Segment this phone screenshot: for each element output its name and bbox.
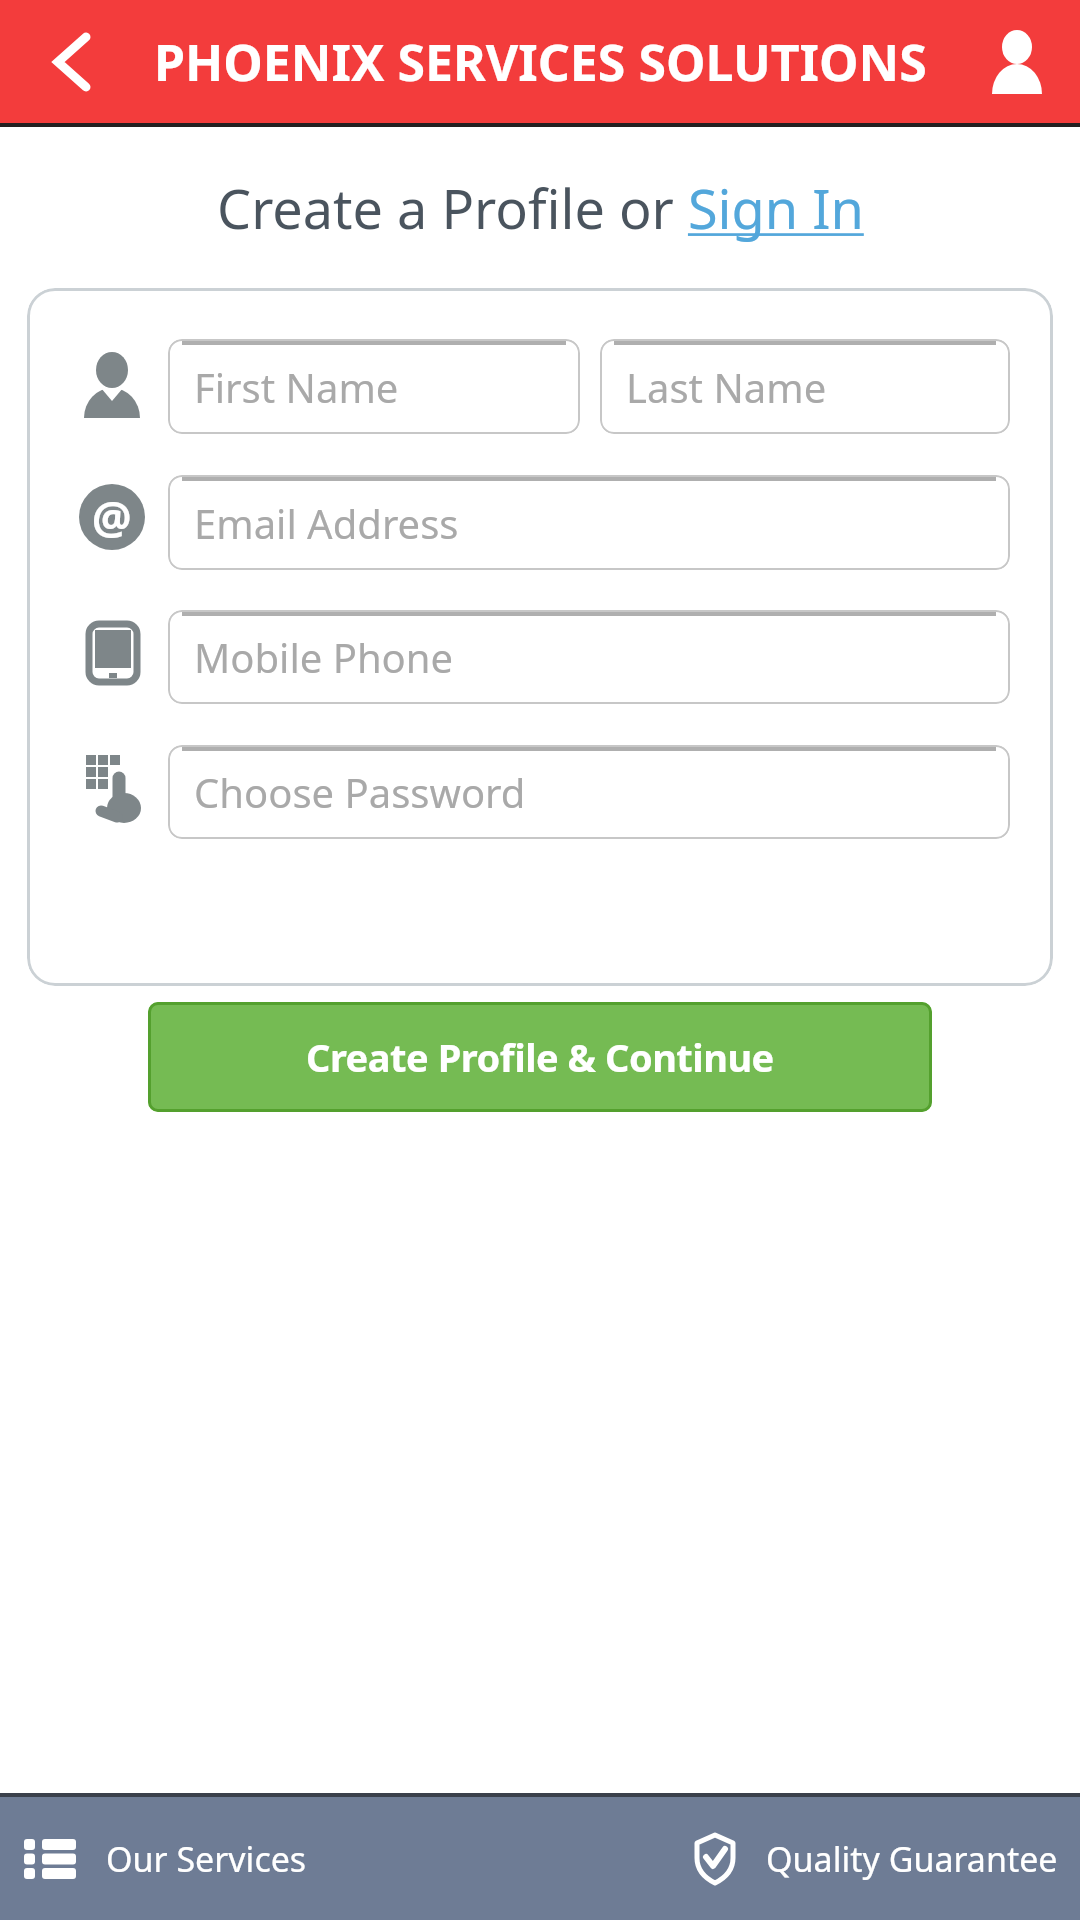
staticText: @ bbox=[92, 487, 132, 547]
button[interactable]: Last Name bbox=[600, 339, 1010, 434]
staticText: First Name bbox=[194, 360, 399, 414]
staticText: Create Profile & Continue bbox=[306, 1031, 774, 1083]
staticText: Mobile Phone bbox=[194, 630, 454, 684]
button[interactable]: Choose Password bbox=[168, 745, 1010, 839]
button[interactable]: Create Profile & Continue bbox=[148, 1002, 932, 1112]
button[interactable]: Create a Profile or Sign In bbox=[217, 171, 864, 245]
button[interactable]: Quality Guarantee bbox=[694, 1832, 1058, 1886]
button[interactable]: First Name bbox=[168, 339, 580, 434]
staticText: Choose Password bbox=[194, 765, 526, 819]
staticText: Our Services bbox=[106, 1836, 307, 1882]
staticText: PHOENIX SERVICES SOLUTIONS bbox=[154, 28, 927, 96]
button[interactable]: Our Services bbox=[0, 1836, 307, 1882]
staticText: Last Name bbox=[626, 360, 827, 414]
staticText: Quality Guarantee bbox=[766, 1836, 1058, 1882]
staticText: Email Address bbox=[194, 496, 459, 550]
button[interactable]: Email Address bbox=[168, 475, 1010, 570]
button[interactable] bbox=[0, 0, 143, 123]
button[interactable] bbox=[954, 0, 1080, 123]
button[interactable]: Mobile Phone bbox=[168, 610, 1010, 704]
